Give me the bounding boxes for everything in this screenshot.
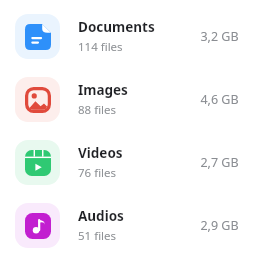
staticText: 88 files [78, 102, 117, 118]
button[interactable]: Audios [0, 203, 264, 248]
staticText: Images [78, 81, 128, 99]
button[interactable]: Documents [0, 14, 264, 59]
staticText: 4,6 GB [200, 91, 239, 108]
staticText: 114 files [78, 39, 123, 55]
staticText: 76 files [78, 165, 117, 181]
button[interactable]: Images [0, 77, 264, 122]
staticText: 51 files [78, 228, 117, 244]
staticText: Videos [78, 144, 123, 162]
staticText: 2,7 GB [200, 154, 239, 171]
staticText: 2,9 GB [200, 217, 239, 234]
staticText: Documents [78, 18, 155, 36]
staticText: Audios [78, 207, 124, 225]
staticText: 3,2 GB [200, 28, 239, 45]
button[interactable]: Videos [0, 140, 264, 185]
